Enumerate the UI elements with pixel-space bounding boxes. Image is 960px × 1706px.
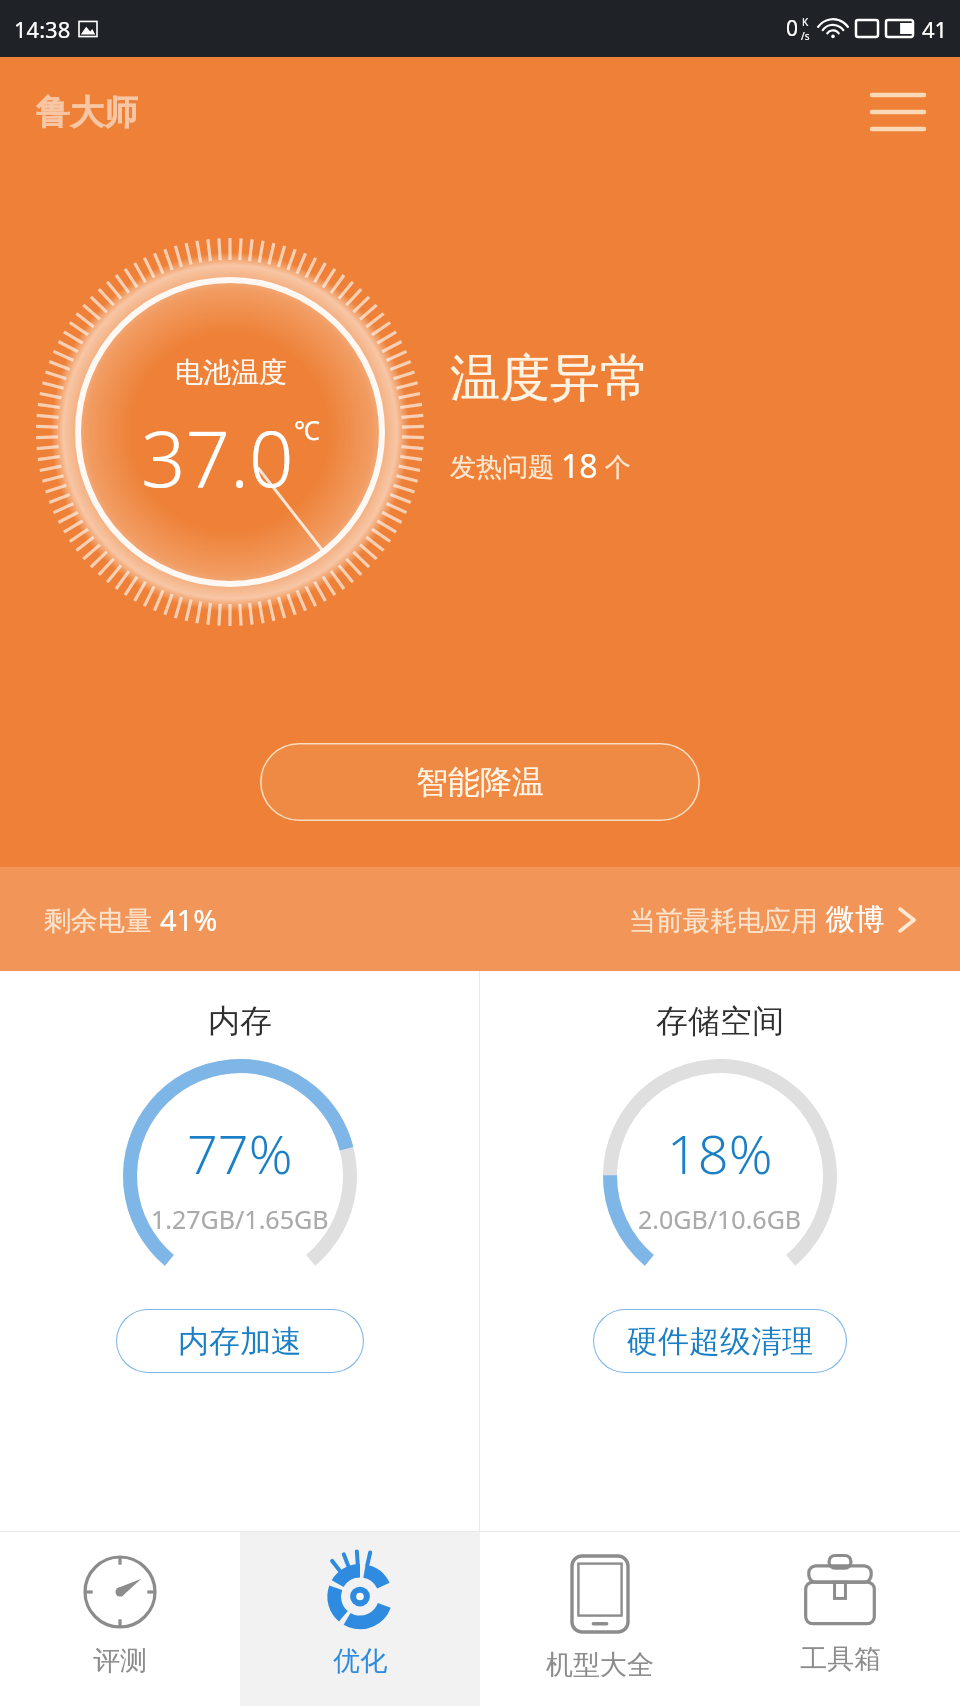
staticText: 内存加速 bbox=[178, 1322, 302, 1361]
staticText: 存储空间 bbox=[656, 1001, 784, 1041]
staticText: 个 bbox=[598, 448, 631, 484]
staticText: 41 bbox=[922, 14, 948, 44]
staticText: 优化 bbox=[333, 1644, 387, 1678]
staticText: 当前最耗电应用 bbox=[629, 901, 826, 938]
button[interactable]: Menu bbox=[866, 80, 930, 144]
staticText: 发热问题 bbox=[450, 448, 561, 484]
button[interactable]: 机型大全 bbox=[480, 1532, 720, 1706]
staticText: ℃ bbox=[294, 412, 320, 447]
staticText: 温度异常 bbox=[450, 347, 650, 410]
button[interactable]: 优化 bbox=[240, 1532, 480, 1706]
staticText: /s bbox=[801, 29, 810, 43]
staticText: K bbox=[802, 15, 809, 29]
button[interactable]: 硬件超级清理 bbox=[593, 1309, 847, 1373]
staticText: 18% bbox=[667, 1116, 773, 1190]
staticText: 14:38 bbox=[14, 14, 71, 44]
staticText: 智能降温 bbox=[416, 762, 544, 802]
staticText: 硬件超级清理 bbox=[627, 1322, 813, 1361]
button[interactable]: 智能降温 bbox=[260, 743, 700, 821]
button[interactable]: 评测 bbox=[0, 1532, 240, 1706]
staticText: 机型大全 bbox=[546, 1648, 654, 1682]
staticText: 2.0GB/10.6GB bbox=[638, 1202, 802, 1236]
staticText: 鲁大师 bbox=[36, 91, 138, 134]
staticText: 37.0 bbox=[141, 404, 294, 510]
staticText: 电池温度 bbox=[175, 355, 287, 390]
staticText: 0 bbox=[786, 14, 799, 43]
staticText: 41% bbox=[160, 900, 218, 939]
staticText: 评测 bbox=[93, 1644, 147, 1678]
staticText: 剩余电量 bbox=[44, 901, 160, 938]
button[interactable]: 当前最耗电应用 bbox=[629, 901, 916, 938]
staticText: 工具箱 bbox=[800, 1642, 881, 1676]
staticText: 18 bbox=[561, 444, 598, 488]
staticText: 微博 bbox=[826, 901, 884, 938]
button[interactable]: 内存加速 bbox=[116, 1309, 364, 1373]
staticText: 77% bbox=[187, 1116, 293, 1190]
button[interactable]: 工具箱 bbox=[720, 1532, 960, 1706]
staticText: 1.27GB/1.65GB bbox=[151, 1202, 329, 1236]
staticText: 内存 bbox=[208, 1001, 272, 1041]
